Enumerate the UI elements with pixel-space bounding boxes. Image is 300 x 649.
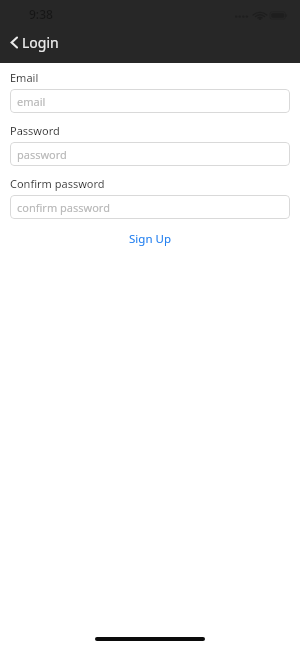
staticText: email <box>17 94 46 109</box>
staticText: Confirm password <box>10 176 105 191</box>
staticText: Login <box>22 33 59 52</box>
staticText: password <box>17 147 67 162</box>
staticText: Email <box>10 70 39 85</box>
button[interactable]: password <box>10 142 290 166</box>
staticText: confirm password <box>17 200 110 215</box>
button[interactable]: Back <box>7 31 65 54</box>
button[interactable]: confirm password <box>10 195 290 219</box>
other: Back <box>10 35 19 50</box>
staticText: 9:38 <box>29 6 53 22</box>
staticText: Sign Up <box>129 231 171 247</box>
staticText: Password <box>10 123 60 138</box>
button[interactable]: Sign Up <box>119 228 181 250</box>
button[interactable]: email <box>10 89 290 113</box>
